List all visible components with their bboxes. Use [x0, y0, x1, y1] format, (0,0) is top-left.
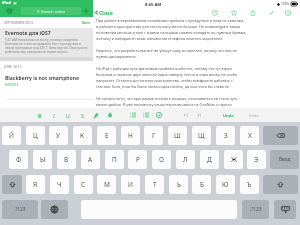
button[interactable]: Outdent [194, 109, 204, 121]
button[interactable]: Г [144, 126, 163, 145]
button[interactable]: Language [41, 200, 68, 219]
staticText: М [104, 180, 110, 189]
button[interactable]: Redo [248, 111, 260, 120]
button[interactable]: Numbered list [141, 109, 151, 121]
staticText: 100% [281, 2, 290, 6]
staticText: Redo [249, 113, 259, 118]
staticText: Undo [223, 113, 234, 118]
staticText: .?123 [250, 206, 262, 213]
button[interactable]: Ч [50, 175, 69, 194]
button[interactable]: Evernote menu [4, 6, 15, 17]
button[interactable]: Т [145, 175, 164, 194]
button[interactable]: Ш [168, 126, 187, 145]
button[interactable]: К [73, 126, 92, 145]
button[interactable]: Reminder [210, 8, 219, 17]
staticText: Ь [177, 180, 181, 189]
button[interactable]: New note [81, 6, 91, 16]
staticText: B [38, 112, 42, 119]
staticText: С [81, 180, 86, 189]
button[interactable]: Share [283, 8, 292, 17]
staticText: Х [248, 131, 252, 140]
staticText: 6/9/2013 [5, 83, 19, 87]
button[interactable]: Sort [82, 20, 90, 25]
staticText: 9:41 AM Написалось в почту, почему созда… [5, 38, 90, 54]
staticText: U [66, 112, 70, 119]
button[interactable]: Numbers [2, 200, 38, 219]
button[interactable]: В [57, 150, 76, 169]
button[interactable]: Ц [26, 126, 45, 145]
button[interactable]: И [121, 175, 140, 194]
button[interactable]: Text color [105, 109, 115, 121]
button[interactable]: Tag [266, 8, 275, 17]
button[interactable]: Б [192, 175, 211, 194]
staticText: Ч [57, 180, 62, 189]
button[interactable]: U [63, 109, 73, 121]
button[interactable]: Undo [222, 111, 235, 120]
staticText: iPad [2, 0, 12, 6]
button[interactable]: З [216, 126, 235, 145]
button[interactable]: Щ [192, 126, 211, 145]
staticText: К [80, 131, 85, 140]
button[interactable]: Ы [33, 150, 52, 169]
staticText: А [88, 155, 93, 164]
button[interactable]: Shift [2, 175, 22, 194]
staticText: Й [9, 131, 14, 140]
button[interactable]: Enter [270, 150, 299, 169]
staticText: На iPad с рабочим пространством проблем … [96, 66, 238, 89]
button[interactable]: О [152, 150, 171, 169]
button[interactable]: Н [121, 126, 140, 145]
button[interactable]: Я [26, 175, 45, 194]
staticText: SEPTEMBER 2013 [4, 20, 34, 25]
button[interactable]: Bullet list [128, 109, 138, 121]
button[interactable]: Numbers [242, 200, 269, 219]
button[interactable]: Ю [216, 175, 235, 194]
button[interactable]: Search notes [21, 7, 81, 15]
button[interactable]: Highlight [91, 109, 101, 121]
staticText: Sort [82, 20, 90, 25]
button[interactable]: Blackberry is not smartphone [0, 72, 93, 99]
button[interactable]: Е [97, 126, 116, 145]
staticText: Надеюсь, что разработчики все же уберут … [96, 48, 237, 59]
button[interactable]: Х [240, 126, 259, 145]
button[interactable]: Info [248, 8, 257, 17]
button[interactable]: Л [176, 150, 195, 169]
button[interactable]: Indent [181, 109, 191, 121]
button[interactable]: Ъ [240, 175, 259, 194]
button[interactable]: Checkbox [154, 109, 164, 121]
button[interactable]: Ь [169, 175, 188, 194]
button[interactable]: У [49, 126, 68, 145]
staticText: Ш [174, 131, 181, 140]
button[interactable]: Evernote для iOS7 [0, 28, 93, 57]
button[interactable]: Close [94, 9, 113, 16]
button[interactable]: Ж [224, 150, 243, 169]
staticText: S [81, 112, 84, 119]
staticText: Я [33, 180, 38, 189]
button[interactable]: Э [247, 150, 266, 169]
staticText: У [56, 131, 61, 140]
button[interactable]: S [77, 109, 87, 121]
button[interactable]: Hide keyboard [274, 200, 296, 219]
staticText: При работе в вертикальном положении проб… [96, 18, 247, 41]
staticText: Ф [16, 155, 22, 164]
button[interactable]: I [49, 109, 59, 121]
staticText: Blackberry is not smartphone [5, 75, 79, 82]
button[interactable]: Backspace [263, 126, 298, 145]
button[interactable]: Shift [263, 175, 298, 194]
button[interactable]: Favorite [229, 8, 238, 17]
button[interactable]: А [81, 150, 100, 169]
staticText: Е [105, 131, 109, 140]
button[interactable]: Й [2, 126, 21, 145]
button[interactable]: М [97, 175, 116, 194]
staticText: Р [136, 155, 140, 164]
button[interactable]: П [105, 150, 124, 169]
button[interactable]: Д [200, 150, 219, 169]
button[interactable]: Р [128, 150, 147, 169]
staticText: JUNE 2013 [4, 64, 22, 69]
staticText: В [64, 155, 69, 164]
staticText: Ц [33, 131, 38, 140]
button[interactable]: B [35, 109, 45, 121]
staticText: И [128, 180, 133, 189]
button[interactable]: С [74, 175, 93, 194]
button[interactable]: Ф [9, 150, 28, 169]
